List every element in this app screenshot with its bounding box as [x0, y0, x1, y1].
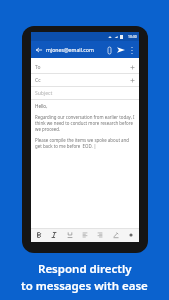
staticText: To: [35, 64, 130, 71]
button[interactable]: Align right: [94, 229, 106, 241]
button[interactable]: More formatting: [125, 229, 137, 241]
button[interactable]: Text color: [110, 229, 122, 241]
staticText: Respond directly: [38, 261, 132, 277]
staticText: 10:30: [128, 34, 137, 39]
button[interactable]: To: [31, 61, 139, 74]
button[interactable]: Send: [114, 43, 127, 56]
staticText: Regarding our conversation from earlier …: [35, 114, 135, 132]
button[interactable]: Subject: [31, 87, 139, 100]
staticText: Cc: [35, 77, 130, 84]
staticText: to messages with ease: [21, 278, 148, 294]
button[interactable]: More options: [127, 45, 137, 55]
staticText: Please compile the items we spoke about …: [35, 137, 135, 149]
button[interactable]: Cc: [31, 74, 139, 87]
button[interactable]: Attach file: [104, 45, 114, 55]
button[interactable]: Bold: [33, 229, 45, 241]
button[interactable]: Align left: [79, 229, 91, 241]
staticText: Hello,: [35, 103, 48, 109]
button[interactable]: Back: [33, 44, 44, 55]
button[interactable]: Underline: [64, 229, 76, 241]
staticText: Subject: [35, 90, 135, 97]
staticText: mjones@email.com: [46, 46, 104, 53]
button[interactable]: Italic: [48, 229, 60, 241]
